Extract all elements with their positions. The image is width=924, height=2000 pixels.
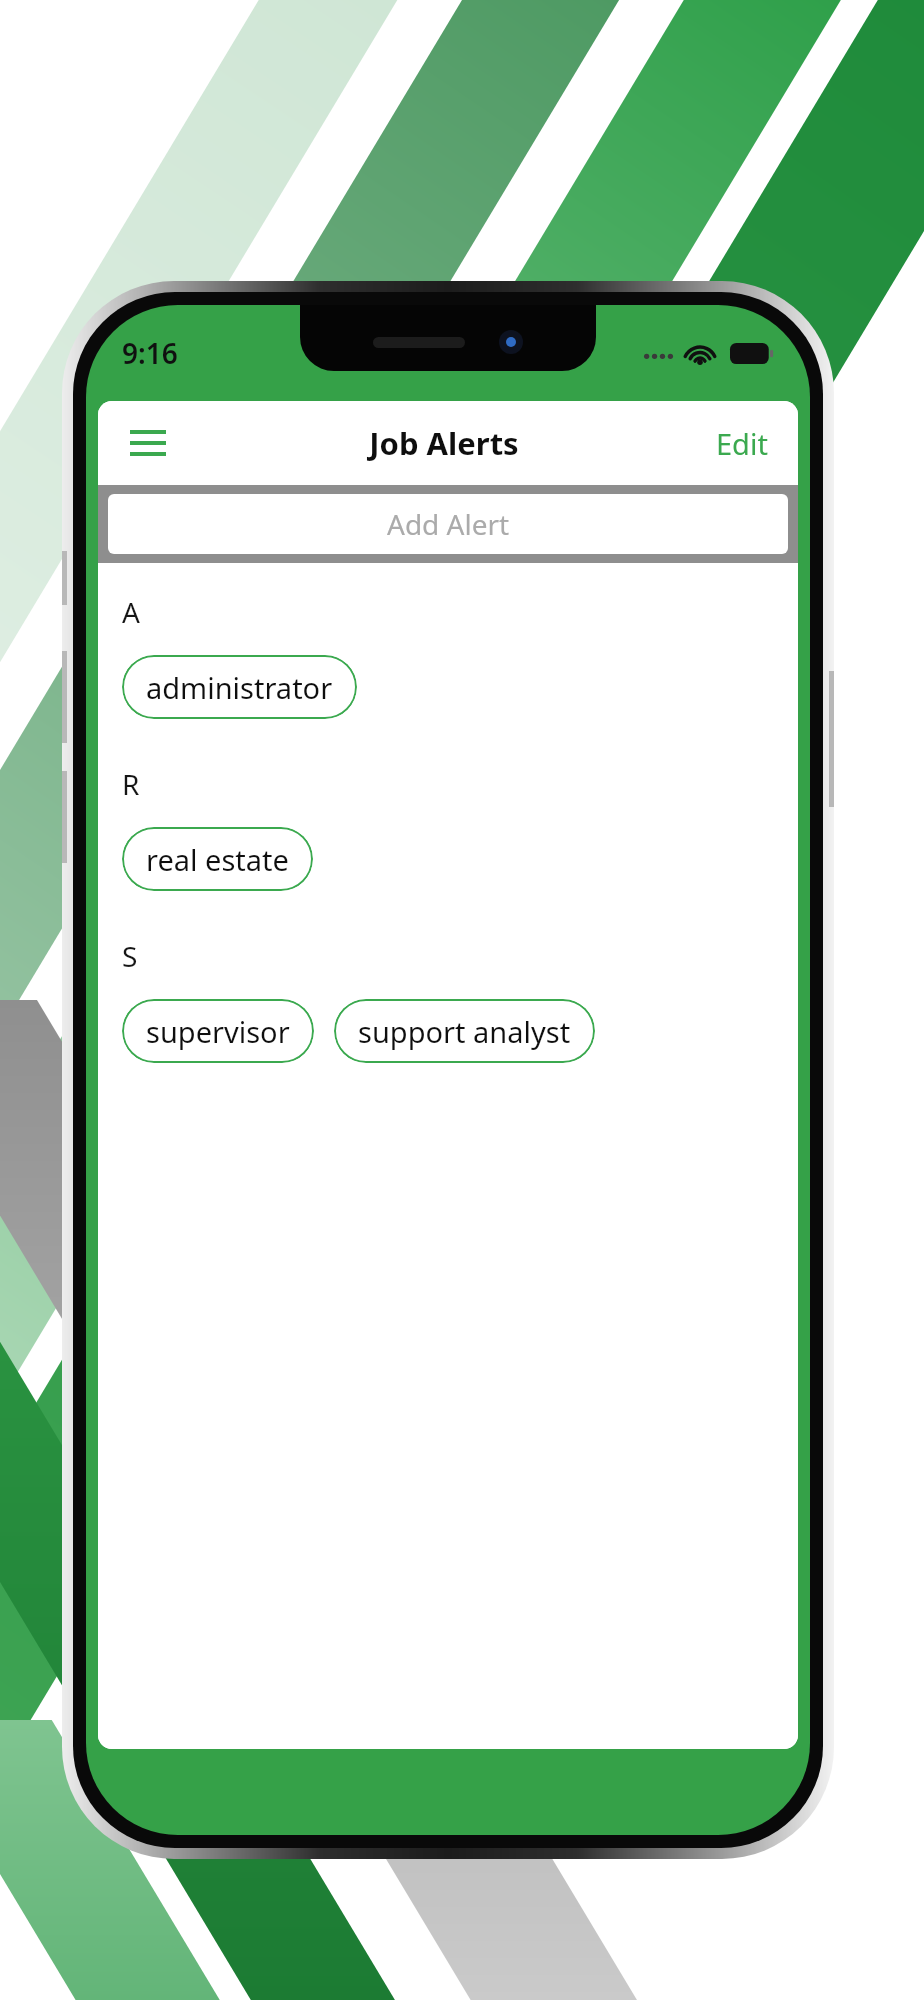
staticText: Add Alert <box>387 505 510 543</box>
staticText: R <box>122 765 140 803</box>
staticText: supervisor <box>146 1012 290 1051</box>
staticText: Edit <box>716 424 768 463</box>
staticText: A <box>122 593 140 631</box>
button[interactable]: Add Alert <box>108 494 788 554</box>
button[interactable]: real estate <box>122 827 313 891</box>
staticText: administrator <box>146 668 333 707</box>
staticText: Job Alerts <box>369 422 519 464</box>
staticText: real estate <box>146 840 289 879</box>
button[interactable]: support analyst <box>334 999 595 1063</box>
staticText: support analyst <box>358 1012 571 1051</box>
button[interactable]: Open navigation menu <box>120 415 176 471</box>
staticText: S <box>122 937 138 975</box>
staticText: 9:16 <box>122 334 178 372</box>
button[interactable]: supervisor <box>122 999 314 1063</box>
button[interactable]: administrator <box>122 655 357 719</box>
button[interactable]: Edit <box>712 416 772 471</box>
